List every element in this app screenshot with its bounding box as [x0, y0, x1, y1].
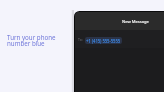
button[interactable]: To: — [75, 30, 164, 48]
staticText: number blue — [7, 39, 45, 47]
staticText: New Message — [122, 19, 149, 25]
staticText: +1 (415) 555-5555 — [86, 38, 121, 44]
staticText: Turn your phone — [7, 33, 56, 41]
staticText: To: — [78, 37, 83, 42]
